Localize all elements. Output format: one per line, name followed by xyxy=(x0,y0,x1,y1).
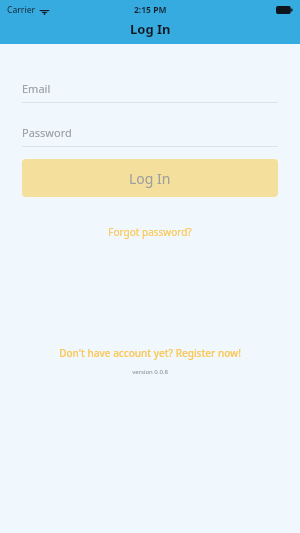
staticText: Forgot password? xyxy=(108,225,192,239)
staticText: 2:15 PM xyxy=(134,4,167,16)
button[interactable]: Don't have account yet? Register now! xyxy=(54,343,246,363)
other: Battery full xyxy=(276,6,293,14)
staticText: Password xyxy=(22,125,72,140)
button[interactable]: Password xyxy=(22,125,278,147)
other: Wi-Fi signal xyxy=(39,6,50,15)
staticText: Log In xyxy=(130,20,171,38)
staticText: version 0.0.8 xyxy=(132,368,168,376)
staticText: Carrier xyxy=(7,4,36,16)
button[interactable]: Log In xyxy=(22,159,278,197)
staticText: Log In xyxy=(129,169,171,188)
button[interactable]: Email xyxy=(22,81,278,103)
button[interactable]: Forgot password? xyxy=(103,222,197,242)
staticText: Don't have account yet? Register now! xyxy=(59,346,241,360)
staticText: Email xyxy=(22,81,51,96)
